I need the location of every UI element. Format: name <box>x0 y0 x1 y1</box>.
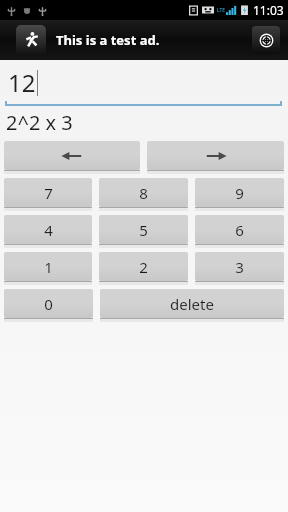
button[interactable]: 5 <box>99 215 188 248</box>
button[interactable]: Move cursor left <box>4 141 140 174</box>
button[interactable]: 0 <box>4 289 93 322</box>
staticText: 1 <box>44 257 53 277</box>
staticText: 8 <box>139 183 148 203</box>
staticText: 2^2 x 3 <box>6 109 73 136</box>
button[interactable]: Move cursor right <box>147 141 284 174</box>
staticText: This is a test ad. <box>56 31 160 49</box>
staticText: 5 <box>139 220 148 240</box>
staticText: LTE <box>217 7 226 14</box>
staticText: delete <box>170 294 214 314</box>
button[interactable]: 7 <box>4 178 92 211</box>
button[interactable]: 2 <box>99 252 188 285</box>
staticText: 2 <box>139 257 148 277</box>
staticText: 11:03 <box>253 2 284 18</box>
button[interactable]: Open ad in browser <box>252 26 280 54</box>
button[interactable]: 3 <box>195 252 284 285</box>
button[interactable]: 9 <box>195 178 284 211</box>
button[interactable]: delete <box>100 289 284 322</box>
button[interactable]: 4 <box>4 215 92 248</box>
staticText: 4 <box>44 220 53 240</box>
button[interactable]: 6 <box>195 215 284 248</box>
staticText: 9 <box>235 183 244 203</box>
staticText: 7 <box>44 183 53 203</box>
button[interactable]: 1 <box>4 252 92 285</box>
button[interactable]: 8 <box>99 178 188 211</box>
staticText: 0 <box>44 294 53 314</box>
staticText: 3 <box>235 257 244 277</box>
staticText: 12 <box>8 66 36 99</box>
staticText: 6 <box>235 220 244 240</box>
button[interactable]: Test advertisement <box>0 20 288 60</box>
button[interactable]: 12 <box>0 60 288 106</box>
